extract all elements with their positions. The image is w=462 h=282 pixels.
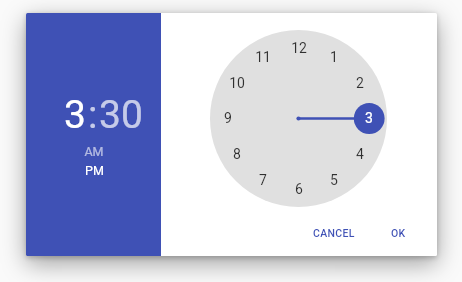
- button[interactable]: 1: [320, 43, 348, 71]
- button[interactable]: 3: [355, 104, 383, 132]
- button[interactable]: OK: [384, 221, 412, 245]
- button[interactable]: PM: [75, 161, 113, 179]
- button[interactable]: 10: [223, 69, 251, 97]
- staticText: 4: [356, 146, 364, 162]
- button[interactable]: 12: [285, 34, 313, 62]
- staticText: :: [88, 92, 98, 138]
- button[interactable]: 6: [285, 175, 313, 203]
- button[interactable]: 4: [346, 140, 374, 168]
- button[interactable]: 7: [249, 166, 277, 194]
- staticText: 10: [229, 75, 245, 91]
- button[interactable]: 8: [223, 140, 251, 168]
- staticText: 1: [330, 49, 338, 65]
- staticText: 12: [291, 40, 307, 56]
- staticText: 30: [99, 92, 143, 138]
- staticText: PM: [85, 163, 104, 178]
- button[interactable]: 5: [320, 166, 348, 194]
- staticText: 6: [295, 181, 303, 197]
- staticText: 5: [330, 172, 338, 188]
- staticText: AM: [84, 144, 104, 159]
- staticText: 3: [365, 110, 373, 126]
- button[interactable]: CANCEL: [308, 221, 360, 245]
- button[interactable]: 30: [96, 85, 144, 131]
- staticText: 8: [233, 146, 241, 162]
- staticText: 2: [356, 75, 364, 91]
- button[interactable]: 2: [346, 69, 374, 97]
- staticText: 11: [255, 49, 271, 65]
- staticText: CANCEL: [313, 227, 355, 239]
- button[interactable]: 11: [249, 43, 277, 71]
- other: Clock face, 3 o'clock selected: [210, 30, 387, 207]
- button[interactable]: 3: [52, 85, 92, 131]
- button[interactable]: AM: [75, 142, 113, 160]
- staticText: 7: [259, 172, 267, 188]
- button[interactable]: 9: [214, 104, 242, 132]
- staticText: OK: [391, 227, 406, 239]
- staticText: 9: [224, 110, 232, 126]
- staticText: 3: [64, 92, 86, 138]
